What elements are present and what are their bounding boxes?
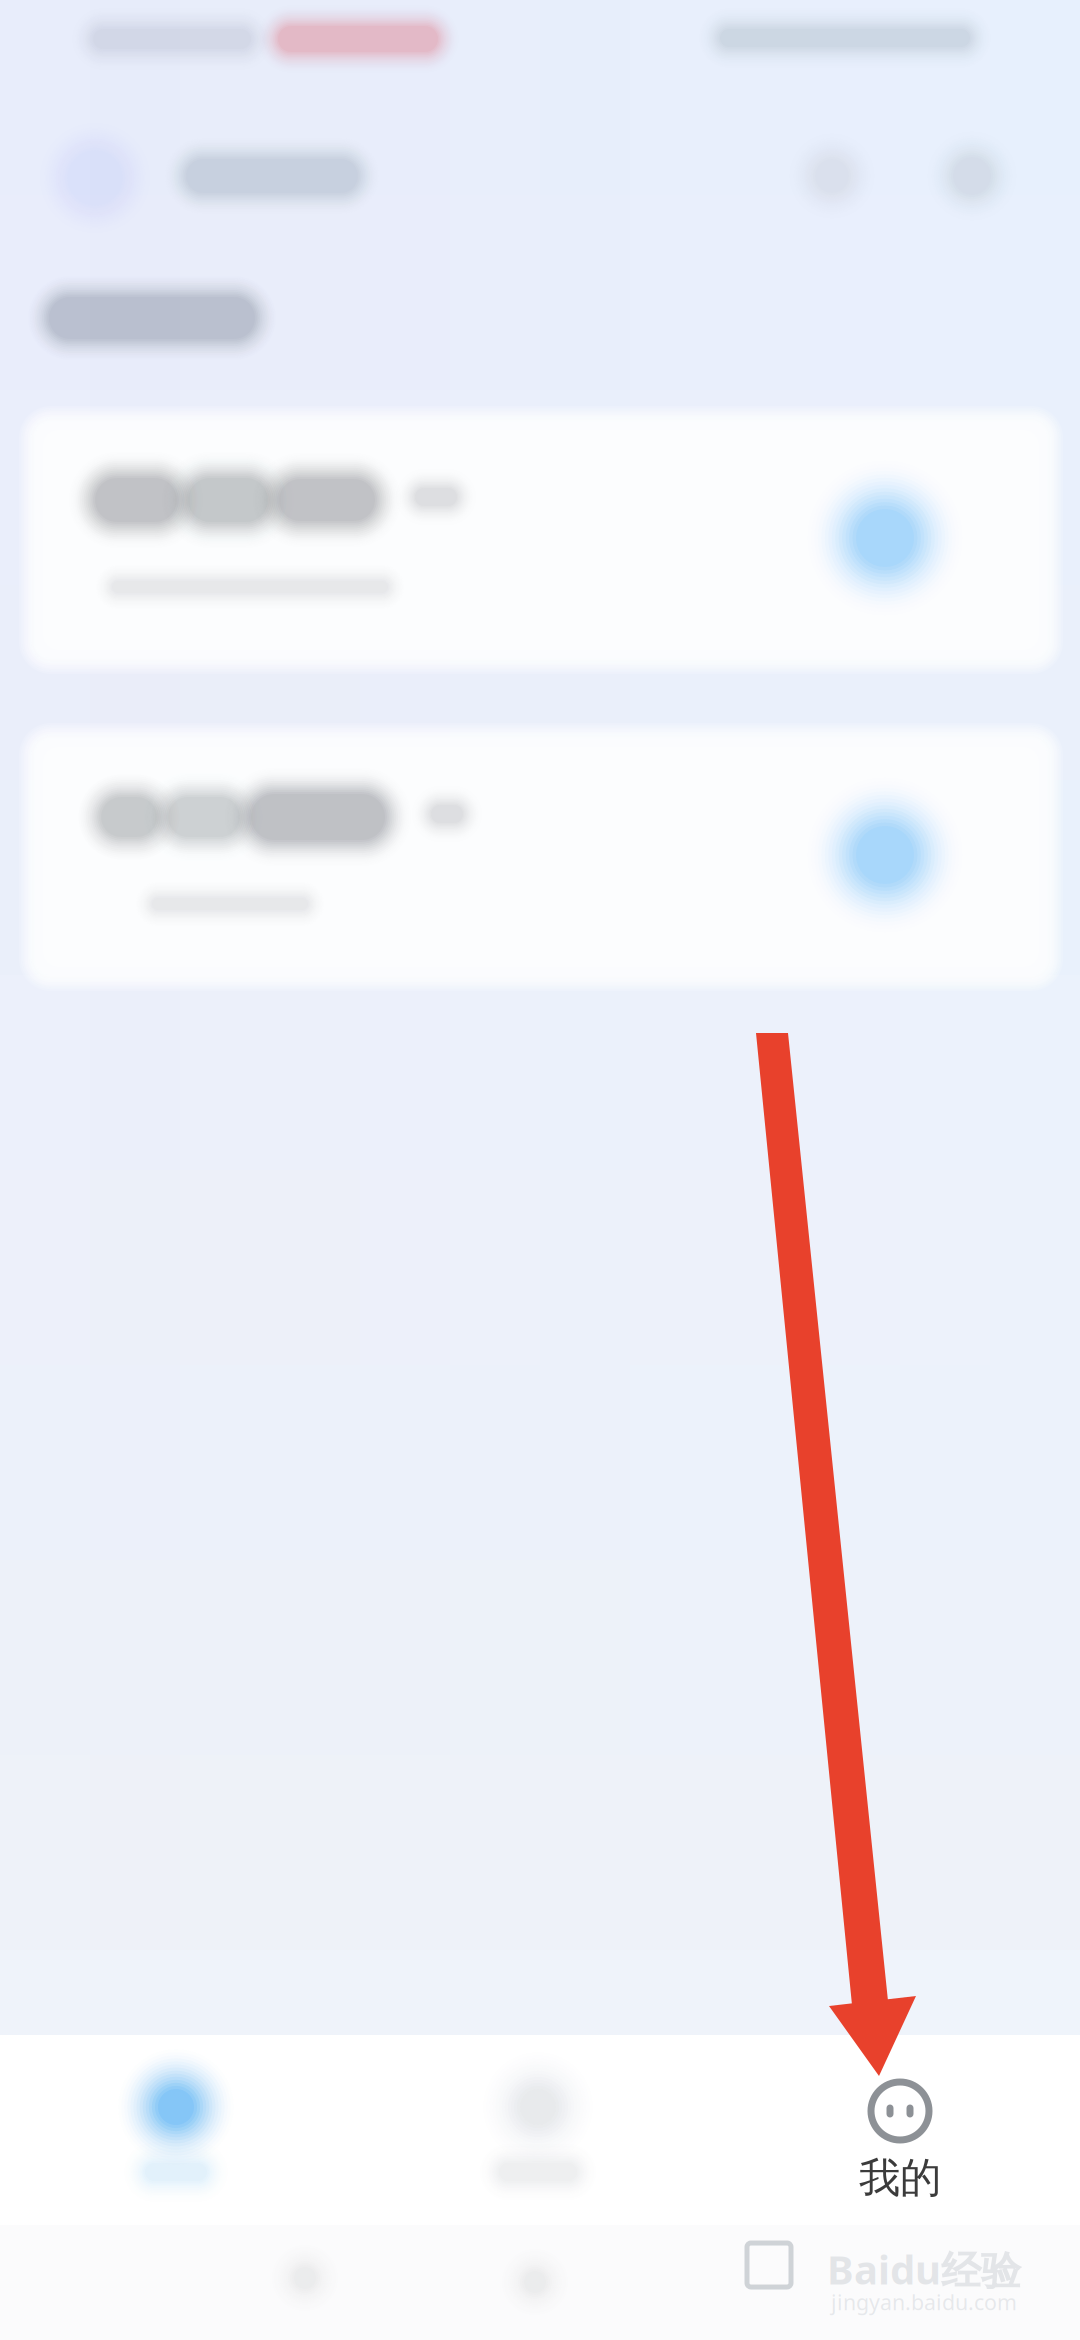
button[interactable]: More xyxy=(0,0,1080,2340)
button[interactable]: 我的 xyxy=(720,2035,1080,2225)
button[interactable]: Scan xyxy=(0,0,1080,2340)
staticText: 我的 xyxy=(859,2153,941,2203)
button[interactable] xyxy=(0,415,1080,665)
button[interactable]: Home xyxy=(0,2035,356,2225)
button[interactable]: Discover xyxy=(358,2035,718,2225)
staticText: Baidu经验 xyxy=(827,2242,1021,2296)
staticText: jingyan.baidu.com xyxy=(831,2288,1017,2316)
button[interactable]: Account xyxy=(0,0,1080,2340)
button[interactable]: Recents xyxy=(654,2225,884,2340)
button[interactable] xyxy=(0,732,1080,982)
